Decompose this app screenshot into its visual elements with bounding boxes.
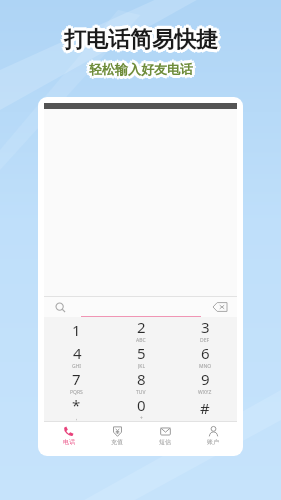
staticText: 7: [72, 369, 81, 389]
button[interactable]: 1: [44, 317, 109, 343]
staticText: 轻松输入好友电话: [89, 58, 193, 74]
button[interactable]: 0: [109, 395, 173, 421]
button[interactable]: 充值: [93, 422, 141, 450]
staticText: #: [200, 398, 210, 418]
staticText: 打电话简易快捷: [66, 28, 220, 56]
staticText: 轻松输入好友电话: [89, 61, 193, 77]
button[interactable]: Search contacts: [51, 298, 69, 316]
staticText: 轻松输入好友电话: [87, 63, 191, 79]
staticText: 电话: [63, 438, 75, 446]
staticText: 打电话简易快捷: [64, 23, 218, 51]
button[interactable]: 4: [44, 343, 109, 369]
staticText: 短信: [159, 438, 171, 446]
staticText: +: [140, 415, 143, 421]
button[interactable]: 8: [109, 369, 173, 395]
staticText: PQRS: [70, 389, 83, 395]
staticText: 6: [201, 343, 210, 363]
button[interactable]: 3: [173, 317, 237, 343]
button[interactable]: 6: [173, 343, 237, 369]
button[interactable]: Backspace: [210, 297, 230, 317]
staticText: ABC: [136, 337, 146, 343]
staticText: *: [72, 395, 81, 415]
staticText: 轻松输入好友电话: [89, 64, 193, 80]
staticText: 打电话简易快捷: [66, 24, 220, 52]
staticText: 5: [137, 343, 146, 363]
staticText: 打电话简易快捷: [64, 26, 218, 54]
staticText: 1: [72, 320, 81, 340]
staticText: 打电话简易快捷: [61, 26, 215, 54]
staticText: 轻松输入好友电话: [91, 63, 195, 79]
button[interactable]: 电话: [44, 422, 93, 450]
staticText: WXYZ: [198, 389, 212, 395]
staticText: DEF: [200, 337, 210, 343]
button[interactable]: 短信: [141, 422, 189, 450]
button[interactable]: 5: [109, 343, 173, 369]
staticText: MNO: [199, 363, 212, 369]
staticText: 充值: [111, 438, 123, 446]
button[interactable]: 2: [109, 317, 173, 343]
staticText: 0: [137, 395, 146, 415]
staticText: 2: [137, 317, 146, 337]
button[interactable]: 9: [173, 369, 237, 395]
staticText: 账户: [207, 438, 219, 446]
staticText: 轻松输入好友电话: [91, 59, 195, 75]
button[interactable]: *: [44, 395, 109, 421]
staticText: 打电话简易快捷: [64, 29, 218, 57]
staticText: GHI: [72, 363, 82, 369]
staticText: 打电话简易快捷: [62, 28, 216, 56]
staticText: 打电话简易快捷: [62, 24, 216, 52]
button[interactable]: 账户: [189, 422, 237, 450]
staticText: JKL: [138, 363, 146, 369]
staticText: 轻松输入好友电话: [87, 59, 191, 75]
staticText: 8: [137, 369, 146, 389]
button[interactable]: 7: [44, 369, 109, 395]
staticText: 3: [201, 317, 210, 337]
staticText: 轻松输入好友电话: [86, 61, 190, 77]
staticText: 轻松输入好友电话: [92, 61, 196, 77]
staticText: 打电话简易快捷: [67, 26, 221, 54]
staticText: 9: [201, 369, 210, 389]
staticText: TUV: [136, 389, 146, 395]
staticText: ‚: [76, 415, 78, 421]
button[interactable]: #: [173, 395, 237, 421]
staticText: 4: [73, 343, 82, 363]
